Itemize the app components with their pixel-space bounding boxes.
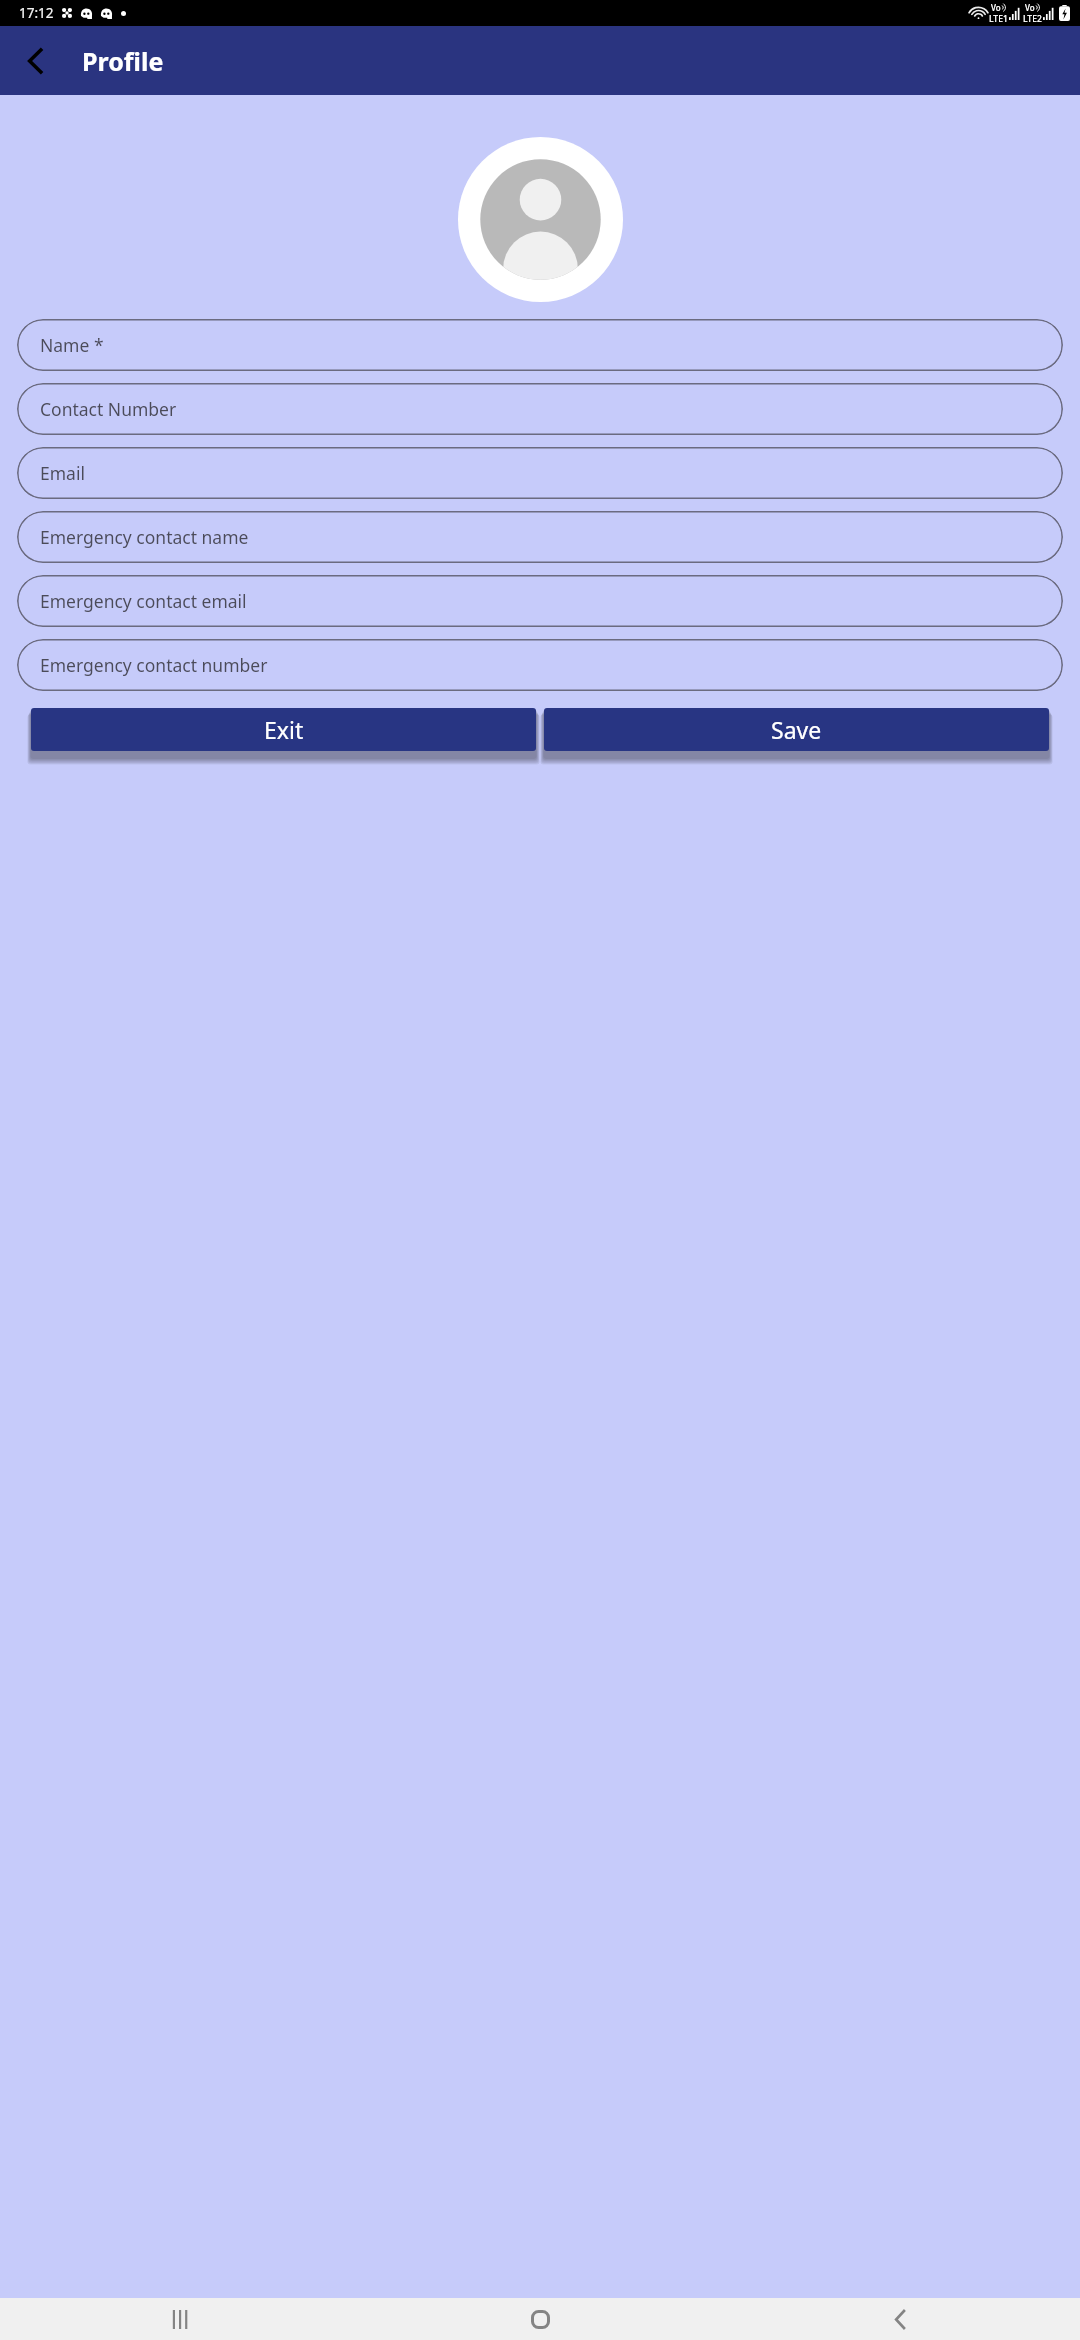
- button[interactable]: Exit: [31, 708, 536, 751]
- button[interactable]: Name *: [17, 319, 1063, 371]
- staticText: Email: [40, 461, 85, 485]
- button[interactable]: Save: [544, 708, 1049, 751]
- button[interactable]: Contact Number: [17, 383, 1063, 435]
- button[interactable]: Recents: [152, 2298, 208, 2340]
- staticText: Exit: [264, 714, 304, 745]
- staticText: Emergency contact number: [40, 653, 268, 677]
- button[interactable]: Email: [17, 447, 1063, 499]
- staticText: LTE2: [1023, 13, 1042, 25]
- staticText: Profile: [82, 44, 164, 78]
- staticText: Vo: [1025, 2, 1035, 13]
- button[interactable]: Emergency contact number: [17, 639, 1063, 691]
- button[interactable]: Back: [8, 33, 64, 89]
- button[interactable]: Emergency contact name: [17, 511, 1063, 563]
- staticText: Emergency contact name: [40, 525, 249, 549]
- staticText: Vo: [991, 2, 1001, 13]
- staticText: 17:12: [19, 4, 54, 22]
- button[interactable]: Back: [872, 2298, 928, 2340]
- staticText: LTE1: [989, 13, 1008, 25]
- staticText: Contact Number: [40, 397, 177, 421]
- staticText: Emergency contact email: [40, 589, 247, 613]
- button[interactable]: Emergency contact email: [17, 575, 1063, 627]
- staticText: Save: [771, 714, 822, 745]
- staticText: Name *: [40, 333, 104, 357]
- button[interactable]: Home: [512, 2298, 568, 2340]
